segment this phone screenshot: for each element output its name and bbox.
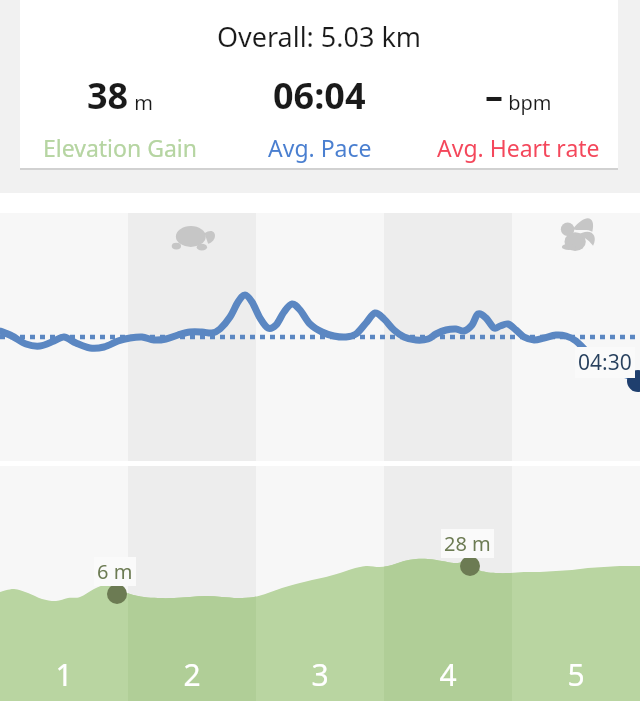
staticText: 1 — [0, 654, 128, 695]
staticText: Avg. Heart rate — [437, 132, 600, 163]
staticText: Avg. Pace — [268, 132, 372, 163]
staticText: 5 — [512, 654, 640, 695]
button[interactable]: Overall: 5.03 km — [20, 0, 618, 168]
staticText: m — [129, 89, 153, 116]
staticText: bpm — [503, 89, 552, 116]
staticText: 2 — [128, 654, 256, 695]
staticText: – — [485, 71, 503, 120]
staticText: 3 — [256, 654, 384, 695]
staticText: Elevation Gain — [43, 132, 197, 163]
staticText: 6 m — [97, 558, 133, 585]
button[interactable]: – — [419, 71, 618, 163]
staticText: 28 m — [444, 530, 491, 557]
button[interactable]: 06:04 — [220, 71, 419, 163]
staticText: Overall: 5.03 km — [20, 18, 618, 55]
button[interactable]: 38 — [20, 71, 220, 163]
staticText: 06:04 — [273, 71, 366, 120]
staticText: 4 — [384, 654, 512, 695]
staticText: 38 — [87, 71, 129, 120]
staticText: 04:30 — [578, 348, 632, 377]
